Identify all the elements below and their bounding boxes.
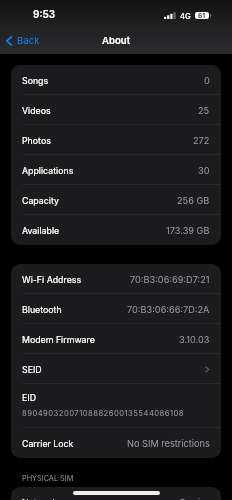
staticText: 0 xyxy=(204,75,210,86)
staticText: Wi-Fi Address xyxy=(22,274,82,285)
button[interactable]: EID xyxy=(11,384,221,428)
staticText: Back xyxy=(17,35,40,47)
staticText: Network xyxy=(22,497,58,500)
button[interactable]: SEID xyxy=(11,354,221,384)
staticText: 25 xyxy=(198,105,210,116)
staticText: Capacity xyxy=(22,195,59,206)
button[interactable]: Carrier Lock xyxy=(11,428,221,458)
staticText: 61 xyxy=(198,12,206,19)
staticText: 30 xyxy=(198,165,210,176)
button[interactable]: Songs xyxy=(11,65,221,95)
staticText: Carrier xyxy=(179,497,210,500)
staticText: 272 xyxy=(193,135,210,146)
staticText: Photos xyxy=(22,135,51,146)
button[interactable]: Available xyxy=(11,215,221,245)
button[interactable]: Videos xyxy=(11,95,221,125)
button[interactable]: Capacity xyxy=(11,185,221,215)
staticText: No SIM restrictions xyxy=(127,438,210,449)
staticText: Songs xyxy=(22,75,49,86)
staticText: About xyxy=(102,35,131,47)
staticText: 3.10.03 xyxy=(179,334,210,345)
button[interactable]: Bluetooth xyxy=(11,294,221,324)
staticText: Modem Firmware xyxy=(22,334,95,345)
button[interactable]: Wi-Fi Address xyxy=(11,264,221,294)
staticText: PHYSICAL SIM xyxy=(22,474,74,483)
button[interactable]: Back xyxy=(0,32,46,50)
staticText: SEID xyxy=(22,364,42,375)
staticText: 256 GB xyxy=(177,195,210,206)
staticText: 9:53 xyxy=(33,8,56,20)
button[interactable]: Network xyxy=(11,487,221,500)
staticText: EID xyxy=(22,392,36,403)
staticText: Carrier Lock xyxy=(22,438,74,449)
button[interactable]: Applications xyxy=(11,155,221,185)
staticText: 173.39 GB xyxy=(166,225,210,236)
staticText: 4G xyxy=(180,12,191,21)
staticText: 89049032007108882600135544086108 xyxy=(22,409,185,418)
staticText: Available xyxy=(22,225,60,236)
staticText: Bluetooth xyxy=(22,304,62,315)
staticText: Videos xyxy=(22,105,51,116)
button[interactable]: Photos xyxy=(11,125,221,155)
staticText: 70:B3:06:66:7D:2A xyxy=(127,304,210,315)
staticText: 70:B3:06:69:D7:21 xyxy=(130,274,210,285)
staticText: Applications xyxy=(22,165,74,176)
button[interactable]: Modem Firmware xyxy=(11,324,221,354)
